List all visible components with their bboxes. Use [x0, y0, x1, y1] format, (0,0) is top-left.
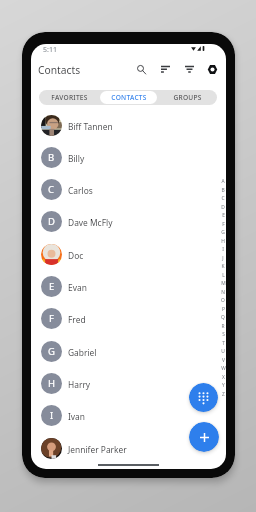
staticText: S	[222, 331, 225, 338]
staticText: Doc	[68, 250, 84, 261]
button[interactable]: Search	[133, 61, 150, 78]
staticText: Gabriel	[68, 347, 97, 358]
button[interactable]: GROUPS	[159, 91, 216, 104]
staticText: Evan	[68, 282, 87, 293]
button[interactable]: Add contact	[189, 422, 219, 452]
staticText: D	[48, 215, 55, 228]
staticText: O	[221, 297, 225, 304]
staticText: T	[222, 340, 225, 347]
staticText: I	[50, 409, 54, 422]
staticText: C	[48, 183, 55, 196]
staticText: A	[221, 178, 225, 185]
button[interactable]: F	[31, 302, 226, 334]
staticText: Ivan	[68, 411, 85, 422]
staticText: H	[221, 238, 225, 245]
staticText: Q	[221, 314, 225, 321]
staticText: R	[221, 323, 225, 330]
staticText: J	[222, 255, 224, 262]
button[interactable]: G	[31, 335, 226, 367]
button[interactable]: B	[31, 141, 226, 173]
staticText: L	[222, 272, 225, 279]
button[interactable]: H	[31, 367, 226, 399]
staticText: Harry	[68, 379, 91, 390]
button[interactable]: D	[31, 205, 226, 237]
staticText: F	[49, 312, 54, 325]
button[interactable]: Biff Tannen	[31, 109, 226, 141]
staticText: V	[222, 357, 225, 364]
staticText: Z	[222, 391, 225, 398]
staticText: C	[221, 195, 225, 202]
staticText: D	[221, 204, 225, 211]
staticText: U	[221, 348, 225, 355]
staticText: B	[48, 151, 55, 164]
staticText: Fred	[68, 314, 86, 325]
staticText: GROUPS	[173, 93, 202, 102]
staticText: Jennifer Parker	[68, 444, 127, 455]
staticText: G	[221, 229, 225, 236]
staticText: B	[221, 187, 225, 194]
staticText: Y	[222, 382, 225, 389]
staticText: E	[49, 280, 55, 293]
staticText: Billy	[68, 153, 85, 164]
staticText: K	[221, 263, 225, 270]
staticText: FAVORITES	[51, 93, 88, 102]
button[interactable]: C	[31, 173, 226, 205]
staticText: CONTACTS	[111, 93, 147, 102]
staticText: N	[221, 289, 225, 296]
staticText: F	[222, 221, 225, 228]
staticText: M	[221, 280, 226, 287]
staticText: Carlos	[68, 185, 93, 196]
button[interactable]: Doc	[31, 238, 226, 270]
staticText: Dave McFly	[68, 217, 113, 228]
button[interactable]: CONTACTS	[100, 91, 157, 104]
button[interactable]: Settings	[204, 61, 221, 78]
staticText: G	[48, 345, 55, 358]
button[interactable]: I	[31, 399, 226, 431]
button[interactable]: Sort	[157, 61, 174, 78]
button[interactable]: Dialpad	[189, 383, 218, 412]
staticText: 5:11	[43, 45, 57, 55]
staticText: Contacts	[38, 63, 81, 77]
staticText: H	[48, 377, 56, 390]
button[interactable]: FAVORITES	[40, 91, 98, 104]
staticText: P	[222, 306, 225, 313]
button[interactable]: Jennifer Parker	[31, 432, 226, 464]
staticText: E	[222, 212, 225, 219]
staticText: W	[221, 365, 226, 372]
staticText: X	[222, 374, 225, 381]
button[interactable]: E	[31, 270, 226, 302]
staticText: Biff Tannen	[68, 121, 113, 132]
staticText: I	[222, 246, 224, 253]
button[interactable]: Filter	[181, 61, 198, 78]
